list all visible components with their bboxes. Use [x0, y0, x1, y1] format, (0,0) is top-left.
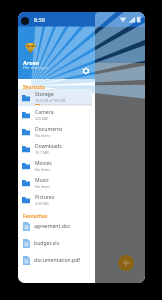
- staticText: Camera: [35, 109, 54, 116]
- staticText: Music: [35, 177, 49, 184]
- staticText: Documents: [35, 126, 63, 133]
- staticText: budget.xls: [34, 240, 60, 247]
- button[interactable]: budget.xls: [18, 235, 95, 252]
- staticText: Movies: [35, 160, 52, 167]
- staticText: 225 MB: [35, 116, 48, 121]
- staticText: Favourites: [23, 213, 48, 219]
- staticText: agreement.doc: [34, 223, 71, 230]
- staticText: documentation.pdf: [34, 257, 81, 264]
- staticText: 10.6 GB of 109 GB: [35, 98, 66, 103]
- staticText: No items: [35, 184, 51, 189]
- staticText: Storage: [35, 91, 54, 98]
- button[interactable]: Storage: [18, 89, 92, 106]
- staticText: Downloads: [35, 143, 62, 150]
- button[interactable]: New item: [118, 255, 134, 271]
- staticText: Arsen: [23, 59, 40, 67]
- button[interactable]: Settings: [79, 64, 92, 77]
- button[interactable]: documentation.pdf: [18, 252, 95, 269]
- staticText: No items: [35, 133, 51, 138]
- staticText: File manager: [23, 65, 49, 71]
- button[interactable]: Documents: [18, 123, 92, 140]
- button[interactable]: Downloads: [18, 140, 92, 157]
- button[interactable]: agreement.doc: [18, 218, 95, 235]
- staticText: Pictures: [35, 194, 55, 201]
- staticText: Shortcuts: [23, 84, 46, 90]
- staticText: 16.7 MB: [35, 150, 49, 155]
- button[interactable]: Camera: [18, 106, 92, 123]
- button[interactable]: Music: [18, 174, 92, 191]
- staticText: 8:59: [34, 16, 45, 23]
- button[interactable]: Movies: [18, 157, 92, 174]
- staticText: No items: [35, 167, 51, 172]
- button[interactable]: Pictures: [18, 191, 92, 208]
- staticText: 3.35 MB: [35, 201, 49, 206]
